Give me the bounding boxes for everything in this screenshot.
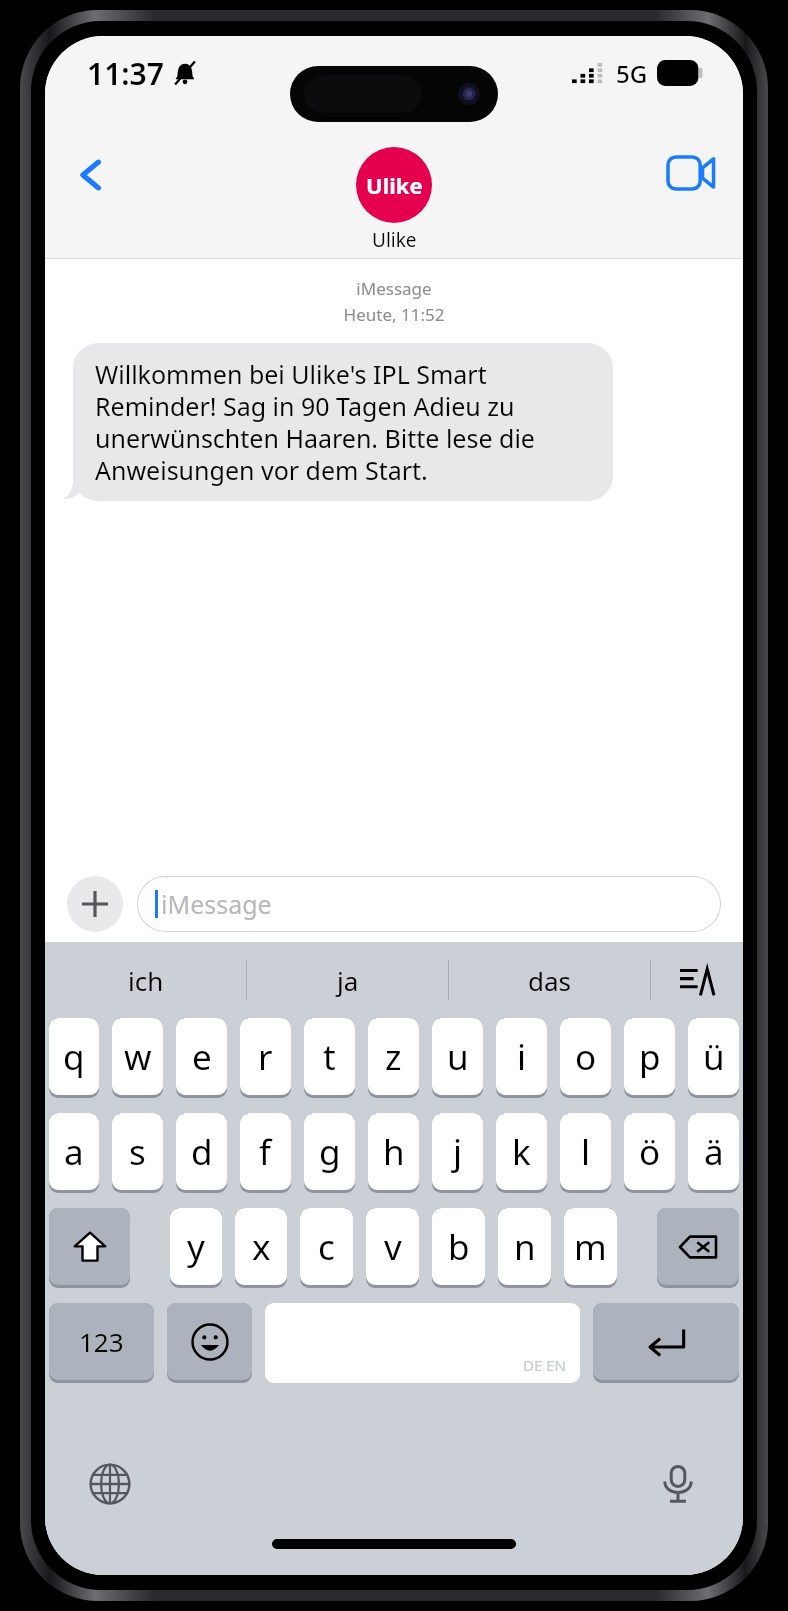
staticText: o <box>575 1033 597 1081</box>
button[interactable]: y <box>170 1208 222 1288</box>
staticText: 5G <box>616 57 648 90</box>
button[interactable]: ä <box>688 1113 739 1193</box>
button[interactable]: u <box>432 1018 483 1098</box>
staticText: m <box>574 1223 607 1271</box>
staticText: v <box>384 1223 402 1271</box>
staticText: ja <box>337 963 359 998</box>
staticText: k <box>512 1128 531 1176</box>
staticText: a <box>64 1128 84 1176</box>
button[interactable]: s <box>112 1113 163 1193</box>
button[interactable]: h <box>368 1113 419 1193</box>
staticText: p <box>639 1033 661 1081</box>
button[interactable]: z <box>368 1018 419 1098</box>
button[interactable]: ich <box>45 942 246 1018</box>
staticText: Willkommen bei Ulike's IPL Smart Reminde… <box>95 357 591 487</box>
staticText: iMessage <box>45 277 743 300</box>
button[interactable]: ja <box>247 942 448 1018</box>
staticText: Ulike <box>372 227 417 253</box>
button[interactable]: Add attachment <box>67 876 123 932</box>
button[interactable]: x <box>235 1208 287 1288</box>
button[interactable]: Return <box>593 1303 739 1383</box>
button[interactable]: Emoji <box>167 1303 252 1383</box>
button[interactable]: t <box>304 1018 355 1098</box>
staticText: r <box>258 1033 273 1081</box>
button[interactable]: das <box>449 942 650 1018</box>
button[interactable]: Text formatting <box>651 942 743 1018</box>
button[interactable]: b <box>432 1208 485 1288</box>
button[interactable]: ö <box>624 1113 675 1193</box>
button[interactable]: m <box>564 1208 617 1288</box>
button[interactable]: Dictation <box>647 1453 709 1515</box>
button[interactable]: Change keyboard language <box>79 1453 141 1515</box>
staticText: DE EN <box>523 1355 566 1375</box>
button[interactable]: g <box>304 1113 355 1193</box>
staticText: das <box>528 963 572 998</box>
button[interactable]: j <box>432 1113 483 1193</box>
staticText: u <box>447 1033 469 1081</box>
staticText: Heute, 11:52 <box>45 303 743 326</box>
button[interactable]: v <box>366 1208 419 1288</box>
button[interactable]: e <box>176 1018 227 1098</box>
button[interactable]: l <box>560 1113 611 1193</box>
button[interactable]: Space <box>265 1303 580 1383</box>
staticText: t <box>323 1033 336 1081</box>
staticText: l <box>581 1128 591 1176</box>
staticText: h <box>383 1128 405 1176</box>
staticText: Ulike <box>366 170 423 200</box>
button[interactable]: Backspace <box>657 1208 739 1288</box>
staticText: j <box>453 1128 463 1176</box>
staticText: f <box>259 1128 272 1176</box>
staticText: ich <box>128 963 164 998</box>
staticText: x <box>252 1223 271 1271</box>
staticText: b <box>448 1223 470 1271</box>
button[interactable]: Numbers <box>49 1303 154 1383</box>
button[interactable]: FaceTime video call <box>659 141 723 205</box>
staticText: i <box>517 1033 527 1081</box>
button[interactable]: r <box>240 1018 291 1098</box>
staticText: ä <box>704 1128 724 1176</box>
button[interactable]: p <box>624 1018 675 1098</box>
button[interactable]: q <box>49 1018 99 1098</box>
button[interactable]: Willkommen bei Ulike's IPL Smart Reminde… <box>73 343 613 501</box>
staticText: q <box>63 1033 85 1081</box>
staticText: s <box>129 1128 146 1176</box>
button[interactable]: Ulike <box>356 147 432 253</box>
button[interactable]: k <box>496 1113 547 1193</box>
staticText: 123 <box>79 1324 124 1359</box>
staticText: z <box>385 1033 402 1081</box>
button[interactable]: d <box>176 1113 227 1193</box>
staticText: y <box>187 1223 205 1271</box>
staticText: iMessage <box>161 887 272 921</box>
staticText: w <box>124 1033 152 1081</box>
staticText: n <box>514 1223 536 1271</box>
button[interactable]: i <box>496 1018 547 1098</box>
button[interactable]: iMessage <box>137 876 721 932</box>
staticText: 11:37 <box>87 53 164 94</box>
staticText: g <box>319 1128 341 1176</box>
staticText: d <box>191 1128 213 1176</box>
button[interactable]: c <box>300 1208 353 1288</box>
staticText: ö <box>639 1128 661 1176</box>
button[interactable]: o <box>560 1018 611 1098</box>
button[interactable]: Shift <box>49 1208 130 1288</box>
button[interactable]: n <box>498 1208 551 1288</box>
staticText: e <box>192 1033 212 1081</box>
button[interactable]: w <box>112 1018 163 1098</box>
staticText: ü <box>703 1033 725 1081</box>
button[interactable]: f <box>240 1113 291 1193</box>
button[interactable]: ü <box>688 1018 739 1098</box>
staticText: c <box>318 1223 335 1271</box>
button[interactable]: a <box>49 1113 99 1193</box>
button[interactable]: Back <box>59 143 123 207</box>
